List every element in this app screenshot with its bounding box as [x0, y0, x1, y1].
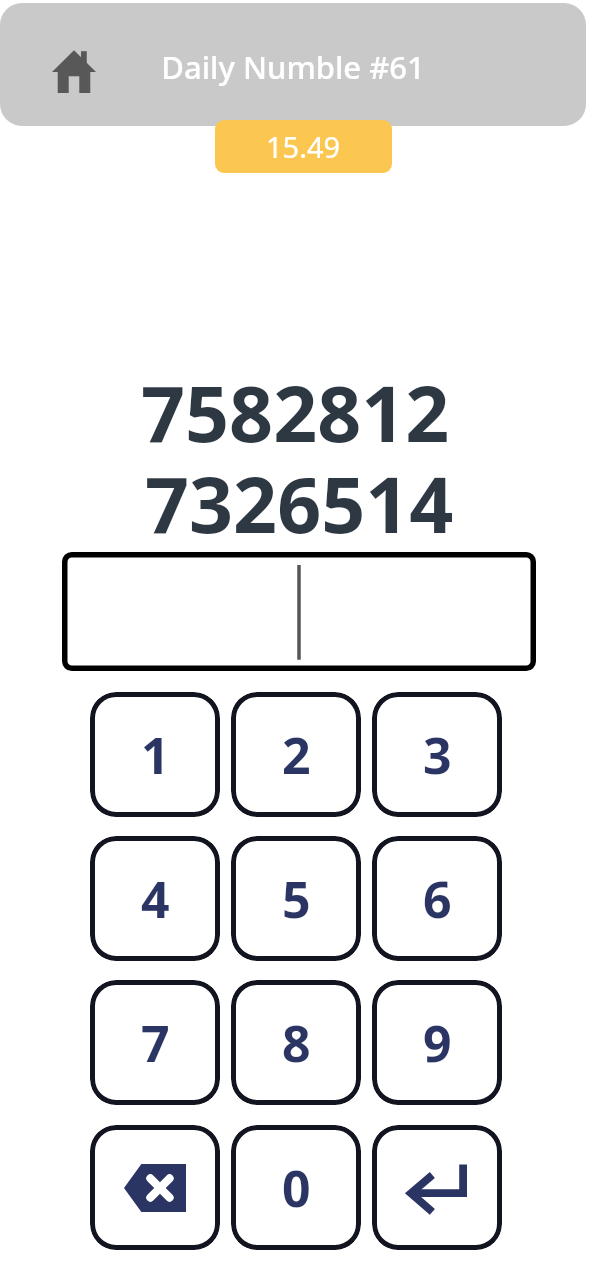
button[interactable]: 15.49	[215, 120, 392, 173]
staticText: 7326514	[145, 451, 454, 556]
button[interactable]: 1	[90, 692, 220, 817]
staticText: 3	[423, 721, 452, 789]
button[interactable]: Answer input	[62, 552, 536, 671]
staticText: 7582812	[141, 360, 450, 465]
button[interactable]: Backspace	[90, 1125, 220, 1250]
staticText: 5	[282, 865, 311, 933]
staticText: Daily Numble #61	[161, 46, 425, 88]
button[interactable]: 2	[231, 692, 361, 817]
staticText: 1	[141, 721, 170, 789]
button[interactable]: Home	[44, 41, 104, 101]
button[interactable]: 9	[372, 980, 502, 1105]
button[interactable]: 8	[231, 980, 361, 1105]
button[interactable]: Enter	[372, 1125, 502, 1250]
button[interactable]: 4	[90, 836, 220, 961]
staticText: 8	[282, 1009, 311, 1077]
staticText: 6	[423, 865, 452, 933]
staticText: 7	[141, 1009, 170, 1077]
staticText: 9	[423, 1009, 452, 1077]
staticText: 0	[282, 1154, 311, 1222]
staticText: 15.49	[266, 127, 341, 166]
button[interactable]: 6	[372, 836, 502, 961]
staticText: 4	[141, 865, 170, 933]
button[interactable]: 3	[372, 692, 502, 817]
button[interactable]: 5	[231, 836, 361, 961]
button[interactable]: 0	[231, 1125, 361, 1250]
button[interactable]: 7	[90, 980, 220, 1105]
staticText: 2	[282, 721, 311, 789]
